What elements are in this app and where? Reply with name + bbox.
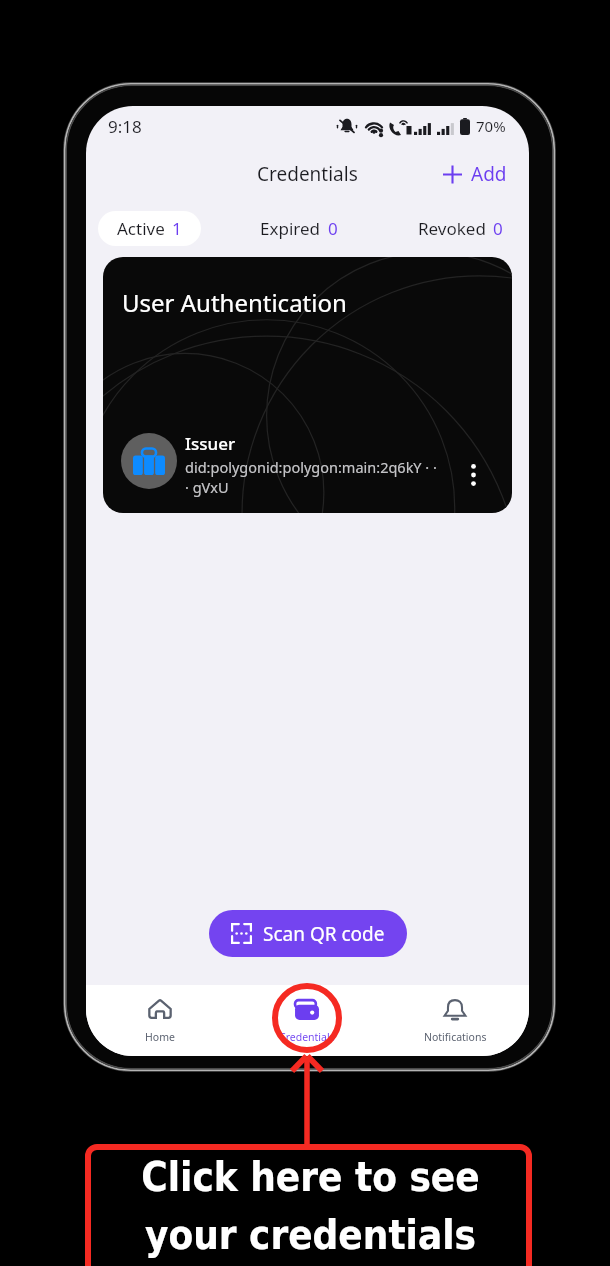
button[interactable]: Notifications bbox=[381, 985, 529, 1056]
staticText: your credentials bbox=[145, 1212, 476, 1259]
button[interactable]: Active bbox=[98, 211, 201, 246]
staticText: Click here to see bbox=[141, 1154, 480, 1201]
staticText: did:polygonid:polygon:main:2q6kY · · · g… bbox=[185, 457, 437, 498]
staticText: 70% bbox=[476, 116, 506, 136]
staticText: 0 bbox=[328, 217, 338, 240]
staticText: User Authentication bbox=[122, 286, 347, 319]
staticText: Scan QR code bbox=[263, 921, 385, 947]
staticText: Issuer bbox=[185, 432, 236, 455]
button[interactable]: Add bbox=[438, 155, 511, 193]
staticText: Credentials bbox=[279, 1030, 335, 1044]
button[interactable]: Scan QR code bbox=[209, 910, 407, 957]
staticText: Home bbox=[145, 1030, 175, 1044]
staticText: 0 bbox=[493, 217, 503, 240]
button[interactable]: Credentials bbox=[233, 985, 381, 1056]
staticText: Revoked bbox=[418, 217, 486, 240]
button[interactable]: More options bbox=[458, 460, 488, 490]
staticText: Notifications bbox=[424, 1030, 487, 1044]
staticText: Add bbox=[471, 161, 507, 187]
button[interactable]: Home bbox=[86, 985, 233, 1056]
button[interactable]: Expired bbox=[246, 211, 352, 246]
button[interactable]: Revoked bbox=[404, 211, 517, 246]
staticText: Active bbox=[117, 217, 165, 240]
staticText: Credentials bbox=[257, 161, 358, 187]
staticText: 1 bbox=[172, 217, 182, 240]
staticText: Expired bbox=[260, 217, 321, 240]
button[interactable]: User Authentication bbox=[103, 257, 512, 513]
staticText: 9:18 bbox=[108, 115, 142, 138]
